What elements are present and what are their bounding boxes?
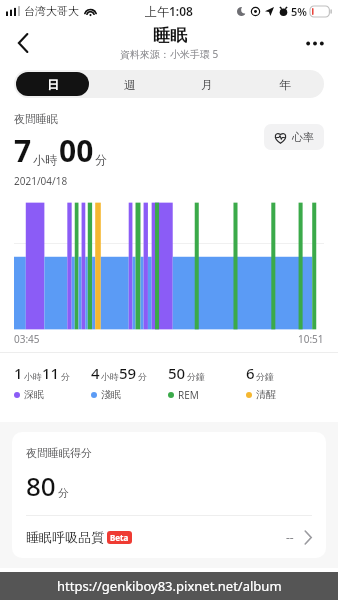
button[interactable]: 心率: [264, 124, 324, 150]
staticText: 分: [95, 152, 107, 167]
staticText: 月: [201, 77, 213, 92]
staticText: 台湾大哥大: [24, 4, 79, 18]
button[interactable]: 1: [14, 363, 91, 401]
staticText: 小時: [33, 152, 57, 167]
staticText: 分鐘: [256, 371, 274, 382]
staticText: 日: [47, 77, 59, 92]
button[interactable]: 6: [246, 363, 324, 401]
staticText: 年: [279, 77, 291, 92]
button[interactable]: 4: [91, 363, 168, 401]
button[interactable]: 週: [93, 72, 166, 96]
staticText: 11: [42, 363, 60, 383]
button[interactable]: 月: [170, 72, 244, 96]
staticText: 上午1:08: [145, 3, 193, 19]
staticText: 分: [58, 486, 69, 500]
staticText: REM: [178, 388, 199, 402]
button[interactable]: 50: [168, 363, 246, 402]
staticText: Beta: [110, 532, 129, 543]
staticText: 小時: [101, 371, 119, 382]
staticText: 分: [61, 371, 70, 382]
staticText: 夜間睡眠: [14, 112, 58, 126]
staticText: 睡眠呼吸品質: [26, 529, 104, 545]
staticText: 7: [14, 130, 32, 171]
staticText: 00: [59, 130, 94, 171]
staticText: 夜間睡眠得分: [26, 446, 92, 460]
staticText: 週: [124, 77, 136, 92]
staticText: 分: [138, 371, 147, 382]
button[interactable]: 日: [16, 72, 89, 96]
staticText: 10:51: [298, 332, 324, 346]
staticText: 50: [168, 363, 186, 383]
staticText: 睡眠: [153, 25, 187, 46]
staticText: 4: [91, 363, 100, 383]
staticText: --: [286, 529, 294, 545]
staticText: 5%: [291, 4, 307, 19]
staticText: 2021/04/18: [14, 174, 68, 188]
staticText: 深眠: [24, 388, 44, 401]
staticText: 59: [119, 363, 137, 383]
staticText: 1: [14, 363, 23, 383]
staticText: 心率: [292, 130, 314, 144]
staticText: 資料來源：小米手環 5: [120, 47, 219, 61]
staticText: 分鐘: [187, 371, 205, 382]
staticText: 80: [26, 468, 56, 503]
button[interactable]: Back: [4, 24, 42, 62]
staticText: 小時: [24, 371, 42, 382]
button[interactable]: 睡眠呼吸品質: [12, 516, 326, 558]
staticText: 清醒: [256, 388, 276, 401]
button[interactable]: More options: [296, 24, 334, 62]
staticText: 淺眠: [101, 388, 121, 401]
staticText: https://genkiboy83.pixnet.net/album: [57, 577, 282, 595]
button[interactable]: 年: [248, 72, 322, 96]
staticText: 03:45: [14, 332, 40, 346]
staticText: 6: [246, 363, 255, 383]
